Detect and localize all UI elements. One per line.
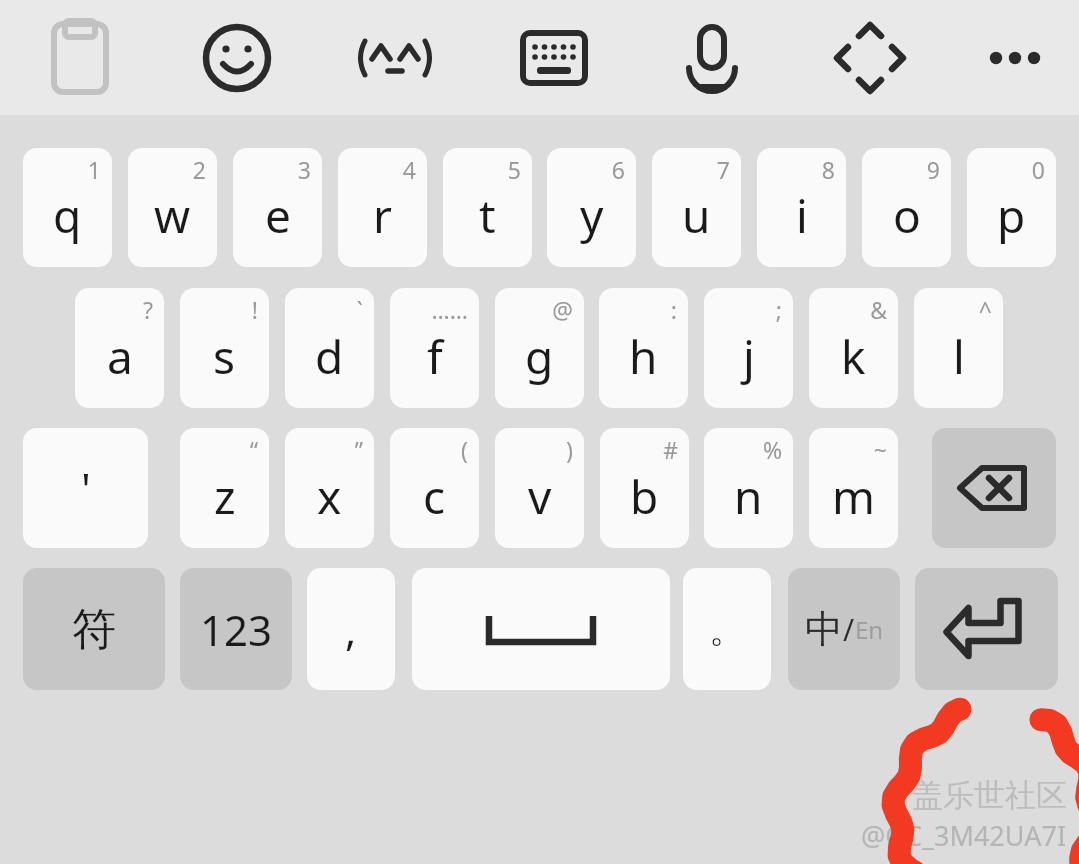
staticText: “ xyxy=(249,434,258,465)
button[interactable]: “ xyxy=(180,428,269,548)
button[interactable]: 1 xyxy=(23,148,112,267)
button[interactable]: Kaomoji xyxy=(347,10,443,106)
button[interactable]: More options xyxy=(967,10,1063,106)
staticText: 7 xyxy=(716,154,730,185)
button[interactable]: ) xyxy=(495,428,584,548)
staticText: , xyxy=(345,601,357,658)
staticText: v xyxy=(528,465,552,528)
staticText: u xyxy=(682,184,711,247)
button[interactable]: Backspace xyxy=(932,428,1056,548)
staticText: ( xyxy=(461,434,468,465)
button[interactable]: ' xyxy=(23,428,148,548)
staticText: & xyxy=(870,294,887,325)
button[interactable]: Emoji xyxy=(189,10,285,106)
staticText: s xyxy=(213,325,236,388)
button[interactable]: Voice input xyxy=(664,10,760,106)
staticText: : xyxy=(670,294,677,325)
button[interactable]: 4 xyxy=(338,148,427,267)
button[interactable]: Keyboard layout xyxy=(506,10,602,106)
button[interactable]: % xyxy=(704,428,793,548)
button[interactable]: 符 xyxy=(23,568,165,690)
button[interactable]: Space xyxy=(412,568,670,690)
staticText: En xyxy=(855,613,884,646)
staticText: ' xyxy=(81,458,91,518)
button[interactable]: ( xyxy=(390,428,479,548)
staticText: w xyxy=(154,184,191,247)
staticText: p xyxy=(997,184,1026,247)
staticText: ? xyxy=(143,294,153,325)
button[interactable]: 9 xyxy=(862,148,951,267)
staticText: x xyxy=(317,465,342,528)
button[interactable]: ; xyxy=(704,288,793,408)
staticText: h xyxy=(629,325,658,388)
staticText: a xyxy=(107,325,133,388)
staticText: 。 xyxy=(709,607,745,652)
button[interactable]: # xyxy=(600,428,689,548)
staticText: …… xyxy=(431,294,468,325)
staticText: @ xyxy=(552,294,573,325)
staticText: l xyxy=(953,325,965,388)
staticText: n xyxy=(734,465,763,528)
staticText: y xyxy=(580,184,604,247)
staticText: ; xyxy=(775,294,782,325)
staticText: ~ xyxy=(873,434,887,465)
button[interactable]: Enter xyxy=(915,568,1058,690)
staticText: 9 xyxy=(926,154,940,185)
staticText: ` xyxy=(356,294,363,325)
staticText: d xyxy=(315,325,344,388)
button[interactable]: 7 xyxy=(652,148,741,267)
staticText: c xyxy=(423,465,446,528)
staticText: 5 xyxy=(507,154,521,185)
staticText: r xyxy=(373,184,392,247)
staticText: / xyxy=(843,609,855,650)
button[interactable]: 2 xyxy=(128,148,217,267)
staticText: 6 xyxy=(611,154,625,185)
button[interactable]: @ xyxy=(495,288,584,408)
button[interactable]: 0 xyxy=(967,148,1056,267)
button[interactable]: & xyxy=(809,288,898,408)
staticText: o xyxy=(893,184,921,247)
button[interactable]: 8 xyxy=(757,148,846,267)
button[interactable]: ” xyxy=(285,428,374,548)
staticText: 盖乐世社区 xyxy=(912,776,1067,815)
staticText: 1 xyxy=(87,154,101,185)
staticText: e xyxy=(265,184,291,247)
staticText: # xyxy=(663,434,678,465)
staticText: k xyxy=(841,325,866,388)
staticText: ! xyxy=(251,294,258,325)
staticText: j xyxy=(743,325,755,388)
staticText: i xyxy=(796,184,808,247)
staticText: f xyxy=(427,325,443,388)
button[interactable]: ! xyxy=(180,288,269,408)
staticText: 中 xyxy=(805,605,843,653)
button[interactable]: 5 xyxy=(443,148,532,267)
button[interactable]: 123 xyxy=(180,568,292,690)
staticText: ” xyxy=(354,434,363,465)
button[interactable]: ? xyxy=(75,288,164,408)
button[interactable]: Move cursor xyxy=(822,10,918,106)
button[interactable]: ~ xyxy=(809,428,898,548)
staticText: ^ xyxy=(978,294,992,325)
staticText: 8 xyxy=(821,154,835,185)
staticText: 符 xyxy=(72,602,116,657)
button[interactable]: ^ xyxy=(914,288,1003,408)
button[interactable]: 6 xyxy=(547,148,636,267)
staticText: q xyxy=(53,184,82,247)
button[interactable]: 3 xyxy=(233,148,322,267)
staticText: b xyxy=(630,465,659,528)
staticText: 123 xyxy=(200,601,273,658)
button[interactable]: , xyxy=(307,568,395,690)
staticText: g xyxy=(525,325,554,388)
button[interactable]: Clipboard xyxy=(32,10,128,106)
button[interactable]: 。 xyxy=(683,568,771,690)
staticText: @GC_3M42UA7I xyxy=(861,817,1067,854)
staticText: z xyxy=(214,465,236,528)
staticText: 3 xyxy=(297,154,311,185)
staticText: t xyxy=(479,184,496,247)
button[interactable]: ` xyxy=(285,288,374,408)
button[interactable]: : xyxy=(599,288,688,408)
button[interactable]: Switch Chinese English xyxy=(788,568,900,690)
staticText: ) xyxy=(566,434,573,465)
button[interactable]: …… xyxy=(390,288,479,408)
staticText: 0 xyxy=(1031,154,1045,185)
